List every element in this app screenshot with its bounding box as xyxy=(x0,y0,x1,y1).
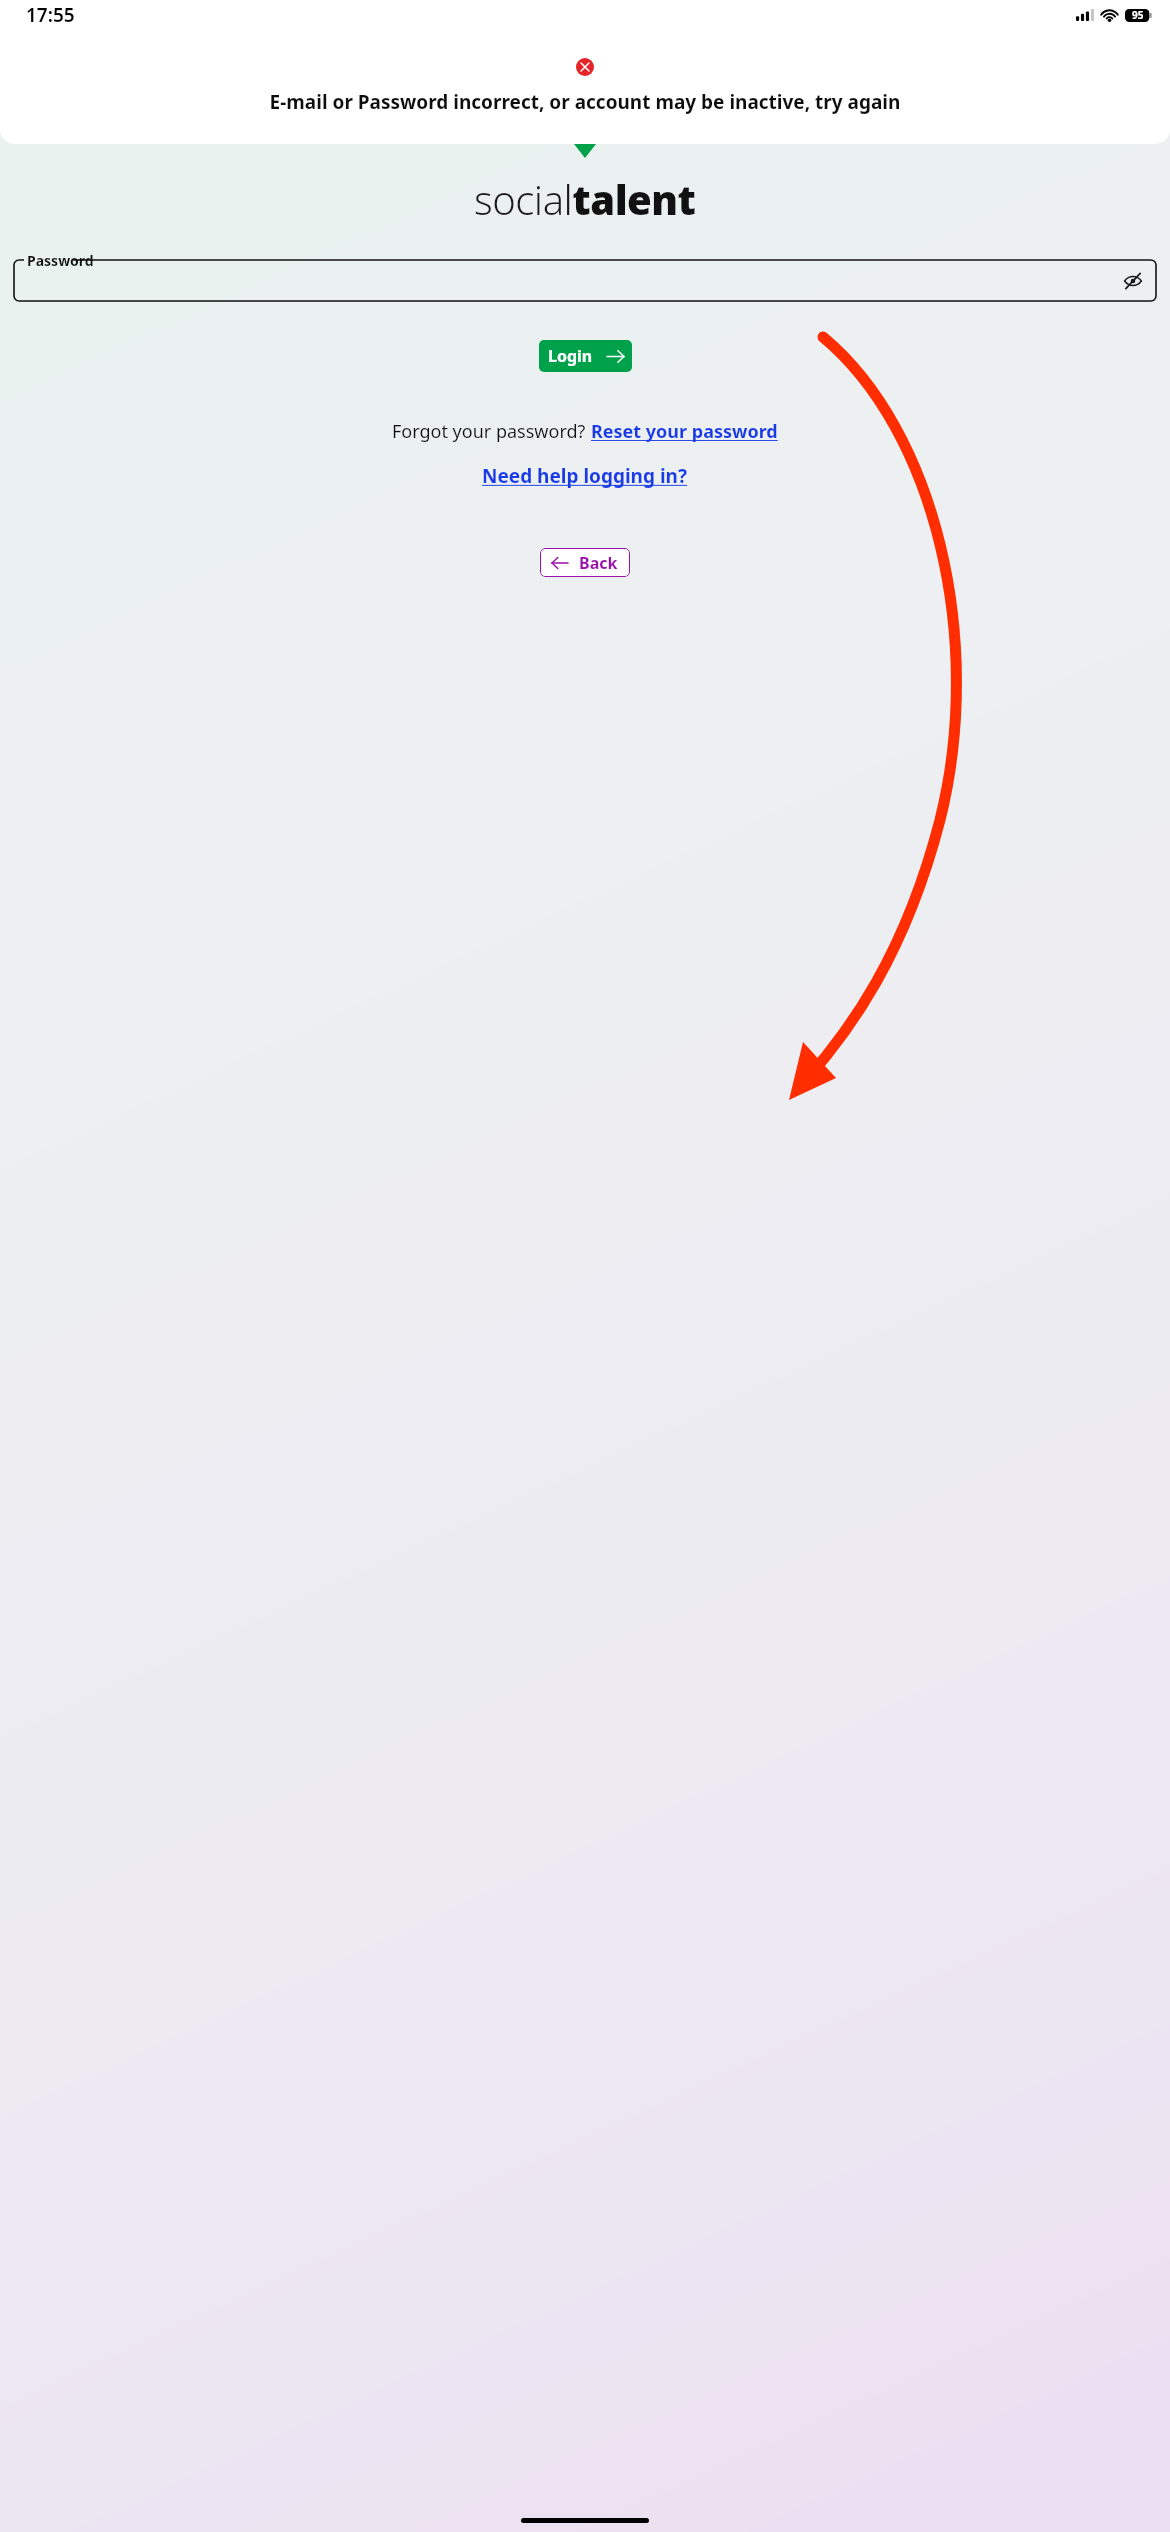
staticText: socialtalent xyxy=(474,172,696,226)
staticText: Password xyxy=(27,251,94,270)
button[interactable]: Need help logging in? xyxy=(482,463,688,489)
staticText: Reset your password xyxy=(591,419,778,444)
button[interactable]: Password xyxy=(14,260,1156,301)
staticText: Login xyxy=(548,345,593,367)
button[interactable]: Back xyxy=(540,548,630,577)
staticText: Need help logging in? xyxy=(482,463,688,489)
staticText: Forgot your password? xyxy=(392,419,591,444)
button[interactable]: Show password xyxy=(1120,268,1146,294)
button[interactable]: Login xyxy=(539,340,632,372)
staticText: Back xyxy=(579,552,618,574)
staticText: E-mail or Password incorrect, or account… xyxy=(24,89,1146,115)
staticText: 17:55 xyxy=(26,2,75,28)
staticText: 95 xyxy=(1132,8,1144,22)
button[interactable]: Reset your password xyxy=(591,419,778,444)
